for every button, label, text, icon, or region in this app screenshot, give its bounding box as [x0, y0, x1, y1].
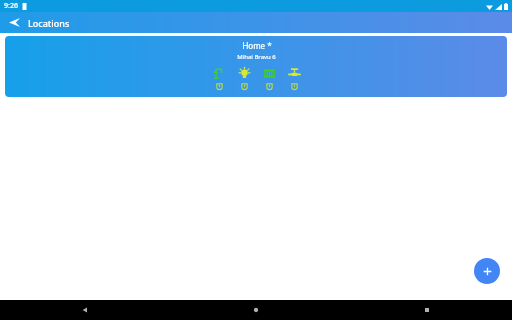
button[interactable]: Gas valve: [286, 66, 302, 90]
staticText: Home *: [242, 40, 272, 51]
button[interactable]: Back: [0, 300, 170, 320]
staticText: Mihai Bravu 6: [237, 53, 276, 61]
button[interactable]: Recents: [341, 300, 512, 320]
button[interactable]: Light: [236, 66, 252, 90]
button[interactable]: Add location: [474, 258, 500, 284]
button[interactable]: Back: [0, 12, 28, 33]
button[interactable]: Water valve: [211, 66, 227, 90]
staticText: 9:26: [4, 1, 18, 11]
button[interactable]: Home *: [5, 36, 507, 97]
button[interactable]: Home: [170, 300, 341, 320]
staticText: Locations: [28, 17, 70, 29]
button[interactable]: Radiator: [261, 66, 277, 90]
